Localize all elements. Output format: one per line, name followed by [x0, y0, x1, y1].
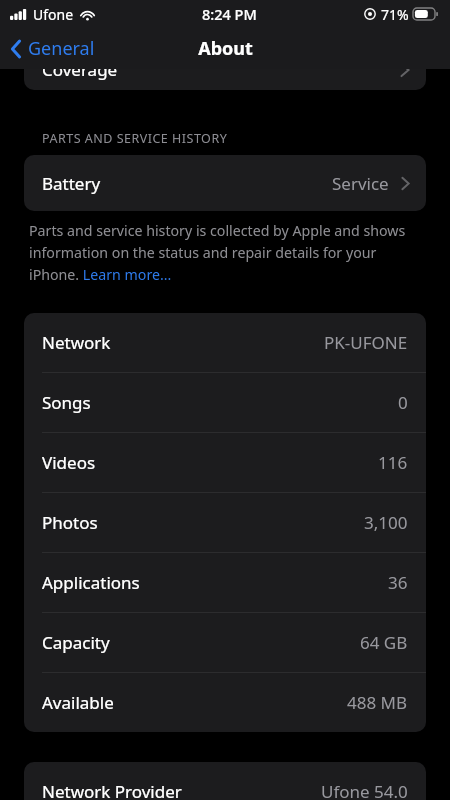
- staticText: Network: [42, 331, 111, 354]
- button[interactable]: Network: [24, 313, 426, 372]
- staticText: PARTS AND SERVICE HISTORY: [42, 130, 228, 147]
- staticText: PK-UFONE: [324, 331, 408, 354]
- staticText: 0: [398, 391, 408, 414]
- button[interactable]: Back: [10, 36, 95, 61]
- button[interactable]: Capacity: [24, 613, 426, 672]
- staticText: 64 GB: [360, 631, 408, 654]
- staticText: Parts and service history is collected b…: [29, 221, 421, 284]
- button[interactable]: Photos: [24, 493, 426, 552]
- staticText: Battery: [42, 172, 101, 195]
- other: Location services: [364, 8, 376, 20]
- staticText: About: [198, 36, 253, 61]
- staticText: Photos: [42, 511, 98, 534]
- button[interactable]: Network Provider: [24, 762, 426, 800]
- staticText: 71%: [381, 5, 409, 24]
- staticText: Ufone 54.0: [321, 780, 408, 800]
- staticText: Service: [332, 172, 389, 195]
- staticText: Available: [42, 691, 114, 714]
- staticText: 3,100: [364, 511, 408, 534]
- button[interactable]: Coverage: [24, 28, 426, 90]
- staticText: 488 MB: [347, 691, 408, 714]
- other: Back: [10, 39, 22, 59]
- other: Wi-Fi: [80, 9, 95, 20]
- staticText: Songs: [42, 391, 91, 414]
- staticText: General: [28, 36, 95, 61]
- staticText: 8:24 PM: [202, 4, 257, 24]
- staticText: Network Provider: [42, 780, 182, 800]
- button[interactable]: Battery: [24, 155, 426, 211]
- staticText: Applications: [42, 571, 140, 594]
- other: Cellular signal: [10, 9, 27, 20]
- staticText: Videos: [42, 451, 96, 474]
- staticText: 116: [378, 451, 408, 474]
- button[interactable]: Videos: [24, 433, 426, 492]
- staticText: Coverage: [42, 58, 118, 81]
- button[interactable]: Applications: [24, 553, 426, 612]
- button[interactable]: Available: [24, 673, 426, 732]
- staticText: 36: [388, 571, 408, 594]
- staticText: Ufone: [33, 5, 74, 24]
- button[interactable]: Songs: [24, 373, 426, 432]
- other: Battery 71 percent: [413, 8, 438, 20]
- staticText: Capacity: [42, 631, 110, 654]
